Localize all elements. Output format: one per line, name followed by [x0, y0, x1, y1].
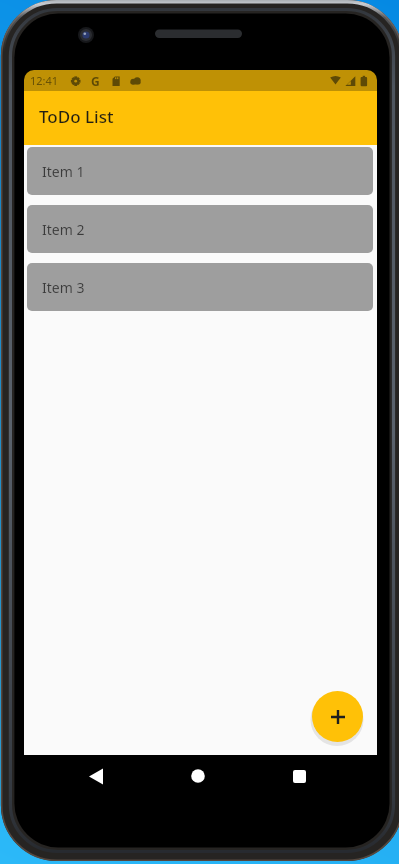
staticText: Item 1	[42, 162, 85, 181]
button[interactable]	[182, 760, 214, 790]
staticText: G	[91, 73, 100, 89]
staticText: ToDo List	[39, 105, 114, 128]
button[interactable]: Item 1	[27, 147, 373, 195]
staticText: Item 2	[42, 220, 85, 239]
staticText: 12:41	[30, 73, 59, 88]
staticText: Item 3	[42, 278, 85, 297]
button[interactable]: Item 2	[27, 205, 373, 253]
button[interactable]	[80, 760, 112, 790]
button[interactable]: Item 3	[27, 263, 373, 311]
button[interactable]	[312, 691, 363, 742]
button[interactable]	[283, 760, 315, 790]
